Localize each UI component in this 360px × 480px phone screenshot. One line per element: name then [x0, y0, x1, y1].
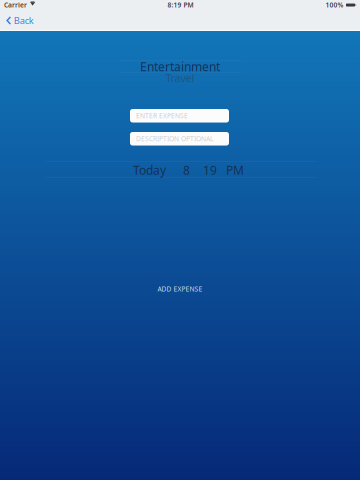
staticText: Back [14, 14, 34, 27]
button[interactable]: ADD EXPENSE [0, 282, 360, 296]
staticText: ENTER EXPENSE [136, 111, 188, 120]
staticText: 19 [203, 162, 217, 178]
staticText: Today [133, 162, 166, 178]
staticText: DESCRIPTION OPTIONAL [136, 134, 213, 143]
staticText: Carrier [4, 1, 27, 9]
staticText: Travel [165, 71, 194, 85]
staticText: 8:19 PM [167, 1, 193, 9]
button[interactable]: DESCRIPTION OPTIONAL [130, 132, 229, 145]
button[interactable]: Back [0, 10, 42, 31]
staticText: 8 [183, 162, 190, 178]
staticText: 100% [325, 1, 343, 9]
staticText: PM [226, 162, 244, 178]
staticText: Entertainment [140, 58, 220, 74]
staticText: ADD EXPENSE [157, 285, 202, 293]
button[interactable]: ENTER EXPENSE [130, 109, 229, 122]
